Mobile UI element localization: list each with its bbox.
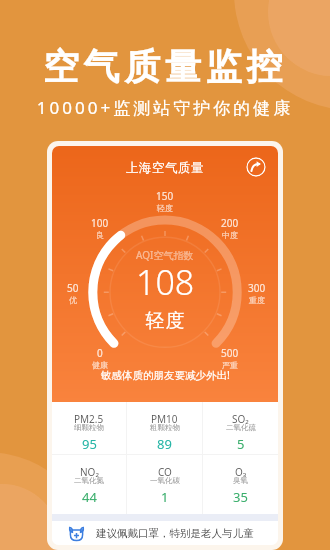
staticText: 上海空气质量: [52, 160, 278, 176]
staticText: PM10: [151, 412, 178, 426]
button[interactable]: CO: [127, 455, 202, 514]
staticText: CO: [158, 465, 172, 479]
staticText: NO₂: [80, 465, 99, 479]
staticText: 敏感体质的朋友要减少外出!: [101, 368, 230, 382]
button[interactable]: SO₂: [203, 402, 278, 454]
staticText: 良: [96, 230, 104, 240]
button[interactable]: Share: [246, 157, 266, 177]
staticText: 50: [67, 281, 79, 295]
staticText: O₃: [235, 465, 247, 479]
staticText: 300: [248, 281, 266, 295]
staticText: PM2.5: [74, 412, 104, 426]
staticText: 150: [156, 189, 174, 203]
staticText: 严重: [222, 360, 238, 370]
staticText: 108: [136, 259, 195, 305]
staticText: 轻度: [157, 203, 173, 213]
staticText: 95: [82, 435, 97, 453]
staticText: 89: [157, 435, 172, 453]
staticText: 粗颗粒物: [150, 423, 180, 432]
staticText: 空气质量监控: [0, 44, 330, 89]
staticText: 优: [69, 295, 77, 305]
staticText: 轻度: [145, 309, 185, 333]
staticText: 二氧化硫: [226, 423, 256, 432]
staticText: 臭氧: [233, 476, 248, 485]
staticText: 44: [82, 488, 97, 506]
button[interactable]: PM2.5: [52, 402, 126, 454]
staticText: 建议佩戴口罩，特别是老人与儿童: [96, 527, 254, 540]
staticText: 100: [91, 216, 109, 230]
button[interactable]: 建议佩戴口罩，特别是老人与儿童: [52, 521, 278, 545]
staticText: AQI空气指数: [136, 248, 194, 262]
staticText: 重度: [249, 295, 265, 305]
staticText: 健康: [92, 360, 108, 370]
staticText: 一氧化碳: [150, 476, 180, 485]
staticText: 0: [97, 346, 103, 360]
staticText: SO₂: [232, 412, 249, 426]
staticText: 细颗粒物: [74, 423, 104, 432]
staticText: 500: [221, 346, 239, 360]
staticText: 35: [233, 488, 248, 506]
staticText: 5: [237, 435, 245, 453]
button[interactable]: PM10: [127, 402, 202, 454]
staticText: 1: [161, 488, 169, 506]
staticText: 二氧化氮: [74, 476, 104, 485]
button[interactable]: O₃: [203, 455, 278, 514]
staticText: 中度: [222, 230, 238, 240]
button[interactable]: NO₂: [52, 455, 126, 514]
staticText: 200: [221, 216, 239, 230]
staticText: 10000+监测站守护你的健康: [0, 96, 330, 119]
